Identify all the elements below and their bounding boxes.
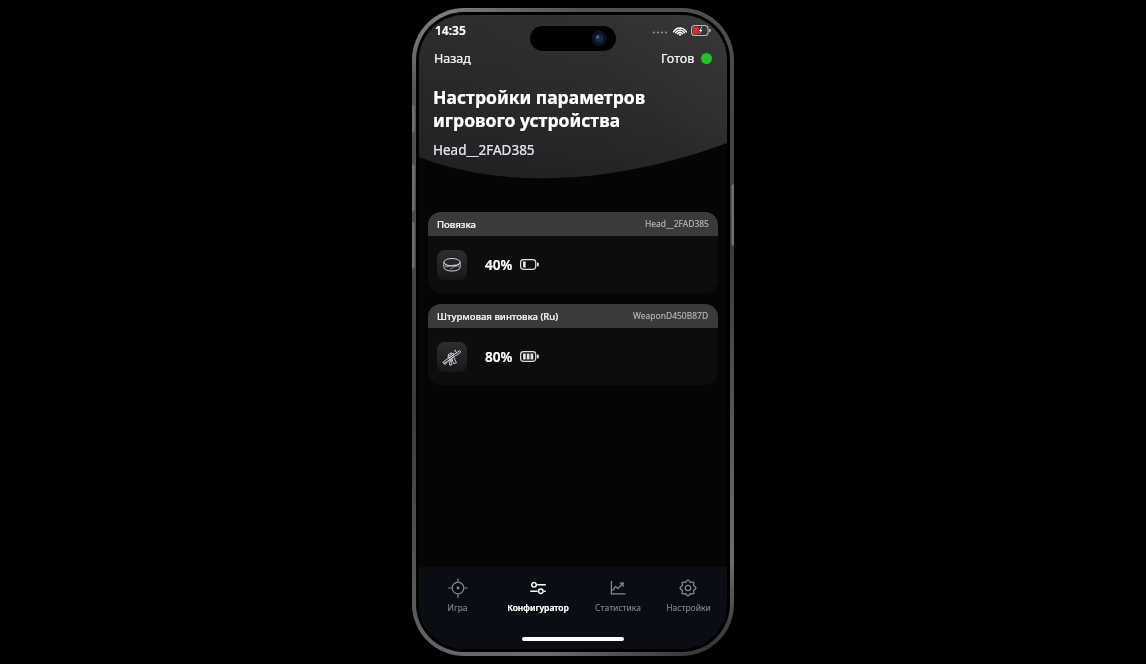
staticText: Готов xyxy=(661,50,695,67)
staticText: 80% xyxy=(485,348,513,366)
button[interactable]: Статистика xyxy=(583,575,653,617)
button[interactable]: Повязка xyxy=(428,212,718,293)
staticText: Head__2FAD385 xyxy=(433,141,535,159)
staticText: 14:35 xyxy=(435,22,466,38)
staticText: Head__2FAD385 xyxy=(645,218,709,230)
staticText: Повязка xyxy=(437,218,476,231)
staticText: Статистика xyxy=(595,602,641,614)
staticText: Назад xyxy=(434,50,471,67)
button[interactable]: Конфигуратор xyxy=(492,575,583,617)
staticText: Штурмовая винтовка (Ru) xyxy=(437,310,559,323)
staticText: Настройки xyxy=(666,602,711,614)
button[interactable]: Готов xyxy=(659,48,714,69)
staticText: 40% xyxy=(485,256,513,274)
button[interactable]: Игра xyxy=(423,575,492,617)
button[interactable]: Настройки xyxy=(653,575,723,617)
button[interactable]: Назад xyxy=(432,48,473,69)
staticText: Настройки параметров игрового устройства xyxy=(433,85,646,132)
staticText: Игра xyxy=(447,602,468,614)
staticText: WeaponD450B87D xyxy=(633,310,709,322)
staticText: Конфигуратор xyxy=(507,602,569,614)
button[interactable]: Штурмовая винтовка (Ru) xyxy=(428,304,718,385)
